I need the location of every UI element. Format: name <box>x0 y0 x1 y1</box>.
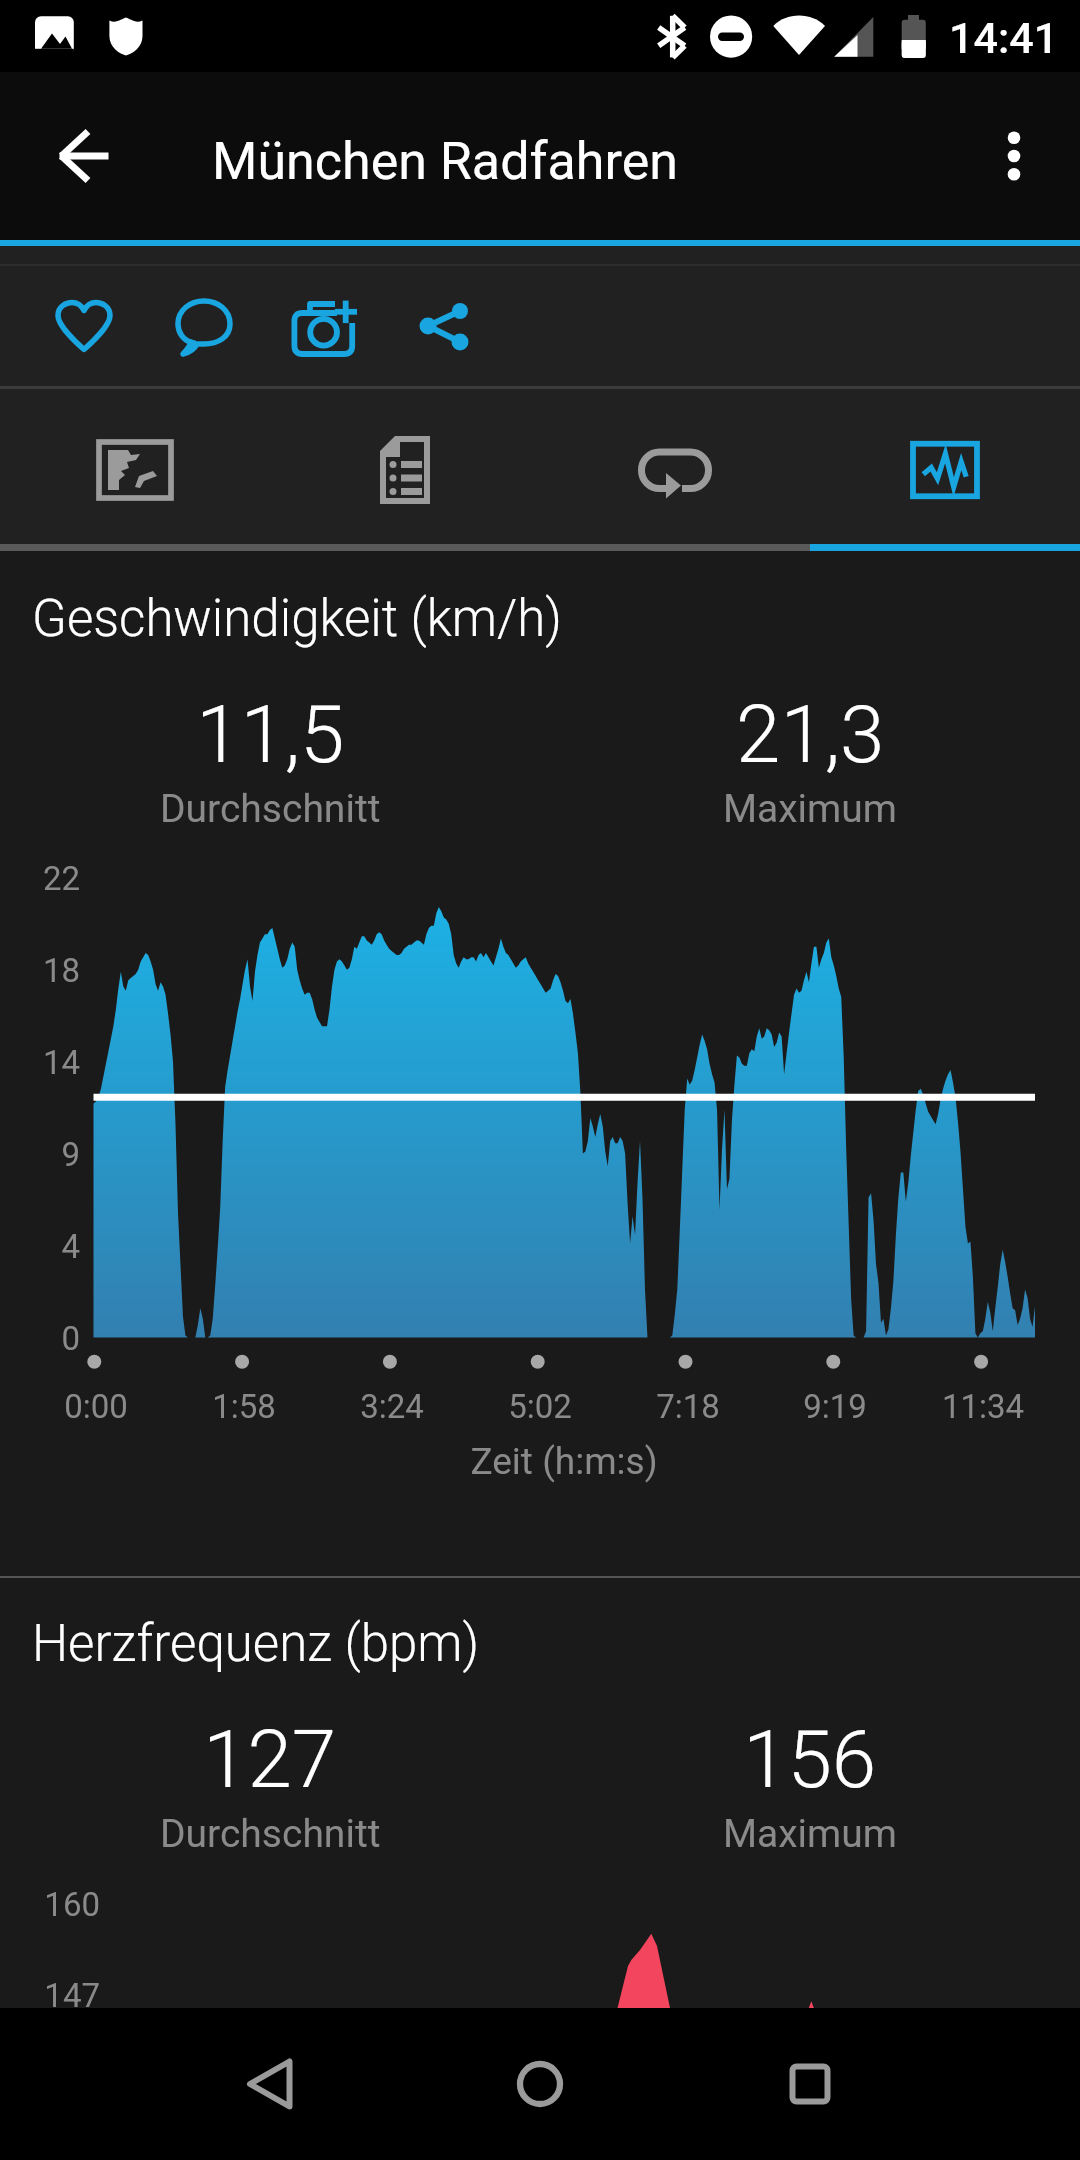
staticText: Maximum <box>723 1811 897 1857</box>
button[interactable]: Comment <box>144 266 264 386</box>
staticText: 11:34 <box>908 1387 1058 1426</box>
staticText: 11,5 <box>196 688 345 782</box>
staticText: 147 <box>5 1976 100 2015</box>
staticText: 3:24 <box>317 1387 467 1426</box>
button[interactable]: Back <box>210 2024 330 2144</box>
staticText: 160 <box>5 1885 100 1924</box>
staticText: 9 <box>2 1135 80 1174</box>
staticText: 0:00 <box>21 1387 171 1426</box>
staticText: 156 <box>743 1713 877 1807</box>
staticText: 7:18 <box>613 1387 763 1426</box>
button[interactable]: Share <box>384 266 504 386</box>
button[interactable]: Back <box>24 96 144 216</box>
staticText: 14:41 <box>949 13 1059 63</box>
staticText: 21,3 <box>736 688 885 782</box>
staticText: 22 <box>2 859 80 898</box>
staticText: 1:58 <box>169 1387 319 1426</box>
staticText: München Radfahren <box>212 131 678 192</box>
button[interactable]: Add photo <box>264 266 384 386</box>
staticText: 14 <box>2 1043 80 1082</box>
staticText: Zeit (h:m:s) <box>364 1440 764 1483</box>
staticText: 127 <box>203 1713 337 1807</box>
staticText: Durchschnitt <box>160 786 381 832</box>
button[interactable]: Charts <box>810 389 1080 544</box>
button[interactable]: Laps <box>540 389 810 544</box>
button[interactable]: Map <box>0 389 270 544</box>
staticText: 5:02 <box>465 1387 615 1426</box>
staticText: 9:19 <box>760 1387 910 1426</box>
button[interactable]: Home <box>480 2024 600 2144</box>
staticText: 0 <box>2 1319 80 1358</box>
staticText: Geschwindigkeit (km/h) <box>32 589 562 649</box>
button[interactable]: Recents <box>750 2024 870 2144</box>
button[interactable]: Details <box>270 389 540 544</box>
staticText: Durchschnitt <box>160 1811 381 1857</box>
button[interactable]: Like <box>24 266 144 386</box>
staticText: Maximum <box>723 786 897 832</box>
staticText: 18 <box>2 951 80 990</box>
staticText: Herzfrequenz (bpm) <box>32 1614 480 1674</box>
staticText: 4 <box>2 1227 80 1266</box>
button[interactable]: More options <box>959 101 1069 211</box>
